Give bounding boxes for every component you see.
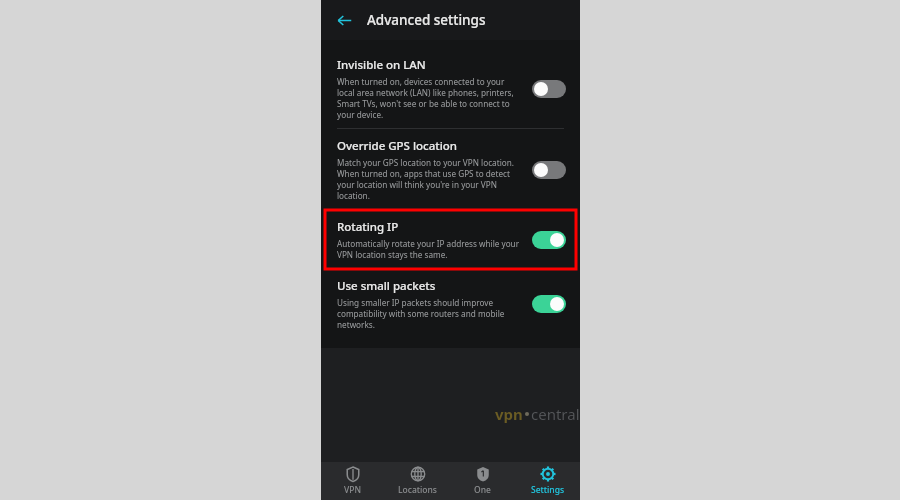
staticText: Using smaller IP packets should improve … bbox=[337, 297, 522, 330]
button[interactable]: Rotating IP bbox=[321, 210, 580, 269]
button[interactable]: Toggle on bbox=[532, 231, 566, 249]
staticText: When turned on, devices connected to you… bbox=[337, 76, 522, 120]
staticText: Use small packets bbox=[337, 278, 436, 294]
staticText: Automatically rotate your IP address whi… bbox=[337, 238, 522, 260]
staticText: Settings bbox=[531, 484, 565, 496]
button[interactable]: Override GPS location bbox=[321, 129, 580, 210]
button[interactable]: Toggle off bbox=[532, 80, 566, 98]
button[interactable]: Use small packets bbox=[321, 269, 580, 338]
button[interactable]: Locations bbox=[385, 462, 450, 500]
button[interactable]: Toggle off bbox=[532, 161, 566, 179]
staticText: Rotating IP bbox=[337, 219, 399, 235]
staticText: Override GPS location bbox=[337, 138, 458, 154]
staticText: vpn bbox=[495, 404, 523, 424]
button[interactable]: One bbox=[450, 462, 515, 500]
button[interactable]: Invisible on LAN bbox=[321, 48, 580, 129]
staticText: Match your GPS location to your VPN loca… bbox=[337, 157, 522, 201]
staticText: Advanced settings bbox=[367, 11, 486, 29]
staticText: Locations bbox=[398, 484, 437, 496]
staticText: VPN bbox=[344, 484, 362, 496]
staticText: central bbox=[531, 404, 580, 424]
button[interactable]: Back bbox=[331, 7, 357, 33]
staticText: One bbox=[474, 484, 491, 496]
staticText: Invisible on LAN bbox=[337, 57, 426, 73]
button[interactable]: Settings bbox=[515, 462, 580, 500]
button[interactable]: VPN bbox=[321, 462, 385, 500]
button[interactable]: Toggle on bbox=[532, 295, 566, 313]
